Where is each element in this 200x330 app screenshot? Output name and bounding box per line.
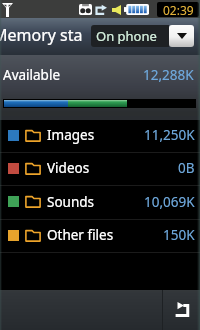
button[interactable]: Sounds [0, 186, 200, 219]
staticText: 11,250K [144, 126, 195, 144]
staticText: Other files [47, 226, 114, 244]
staticText: 150K [163, 226, 195, 244]
button[interactable]: On phone [91, 25, 169, 47]
button[interactable]: Other files [0, 220, 200, 252]
button[interactable]: Videos [0, 153, 200, 185]
staticText: 12,288K [143, 66, 194, 84]
staticText: 0B [178, 159, 195, 177]
staticText: Sounds [47, 193, 95, 211]
staticText: Available [3, 66, 60, 84]
staticText: On phone [96, 27, 157, 45]
button[interactable]: Back [163, 290, 200, 330]
staticText: Images [47, 126, 95, 144]
staticText: 10,069K [144, 193, 195, 211]
button[interactable]: Images [0, 120, 200, 152]
staticText: 02:39 [163, 2, 194, 17]
button[interactable]: Select storage [169, 25, 194, 47]
staticText: Memory sta [0, 24, 83, 46]
staticText: Videos [47, 159, 90, 177]
